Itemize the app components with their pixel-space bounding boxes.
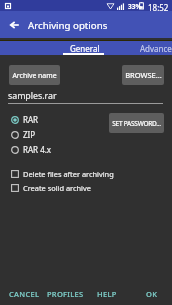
staticText: samples.rar <box>8 90 57 102</box>
staticText: CANCEL <box>9 289 40 299</box>
staticText: Advanced <box>140 43 172 54</box>
button[interactable]: RAR 4.x <box>4 142 94 157</box>
button[interactable]: Archive name <box>9 65 60 85</box>
staticText: PROFILES <box>47 289 84 299</box>
button[interactable]: Delete files after archiving <box>4 166 144 181</box>
staticText: RAR 4.x <box>23 144 52 155</box>
staticText: Delete files after archiving <box>23 169 114 179</box>
staticText: Create solid archive <box>23 183 91 193</box>
button[interactable]: CANCEL <box>5 287 44 301</box>
button[interactable]: Create solid archive <box>4 180 144 195</box>
staticText: OK <box>146 289 158 299</box>
button[interactable]: RAR <box>4 112 94 127</box>
staticText: 33% <box>128 2 142 11</box>
staticText: 18:52 <box>148 2 169 13</box>
staticText: General <box>70 43 100 54</box>
staticText: Archiving options <box>28 19 108 32</box>
button[interactable]: HELP <box>93 287 121 301</box>
staticText: ZIP <box>23 129 36 140</box>
button[interactable]: BROWSE... <box>122 65 164 85</box>
staticText: SET PASSWORD... <box>112 119 161 128</box>
staticText: RAR <box>23 114 39 125</box>
button[interactable]: Back <box>5 16 23 34</box>
button[interactable]: PROFILES <box>43 287 88 301</box>
button[interactable]: OK <box>142 287 162 301</box>
staticText: Archive name <box>12 71 57 80</box>
button[interactable]: SET PASSWORD... <box>109 113 164 133</box>
button[interactable]: ZIP <box>4 127 94 142</box>
staticText: BROWSE... <box>125 70 162 80</box>
staticText: HELP <box>97 289 117 299</box>
